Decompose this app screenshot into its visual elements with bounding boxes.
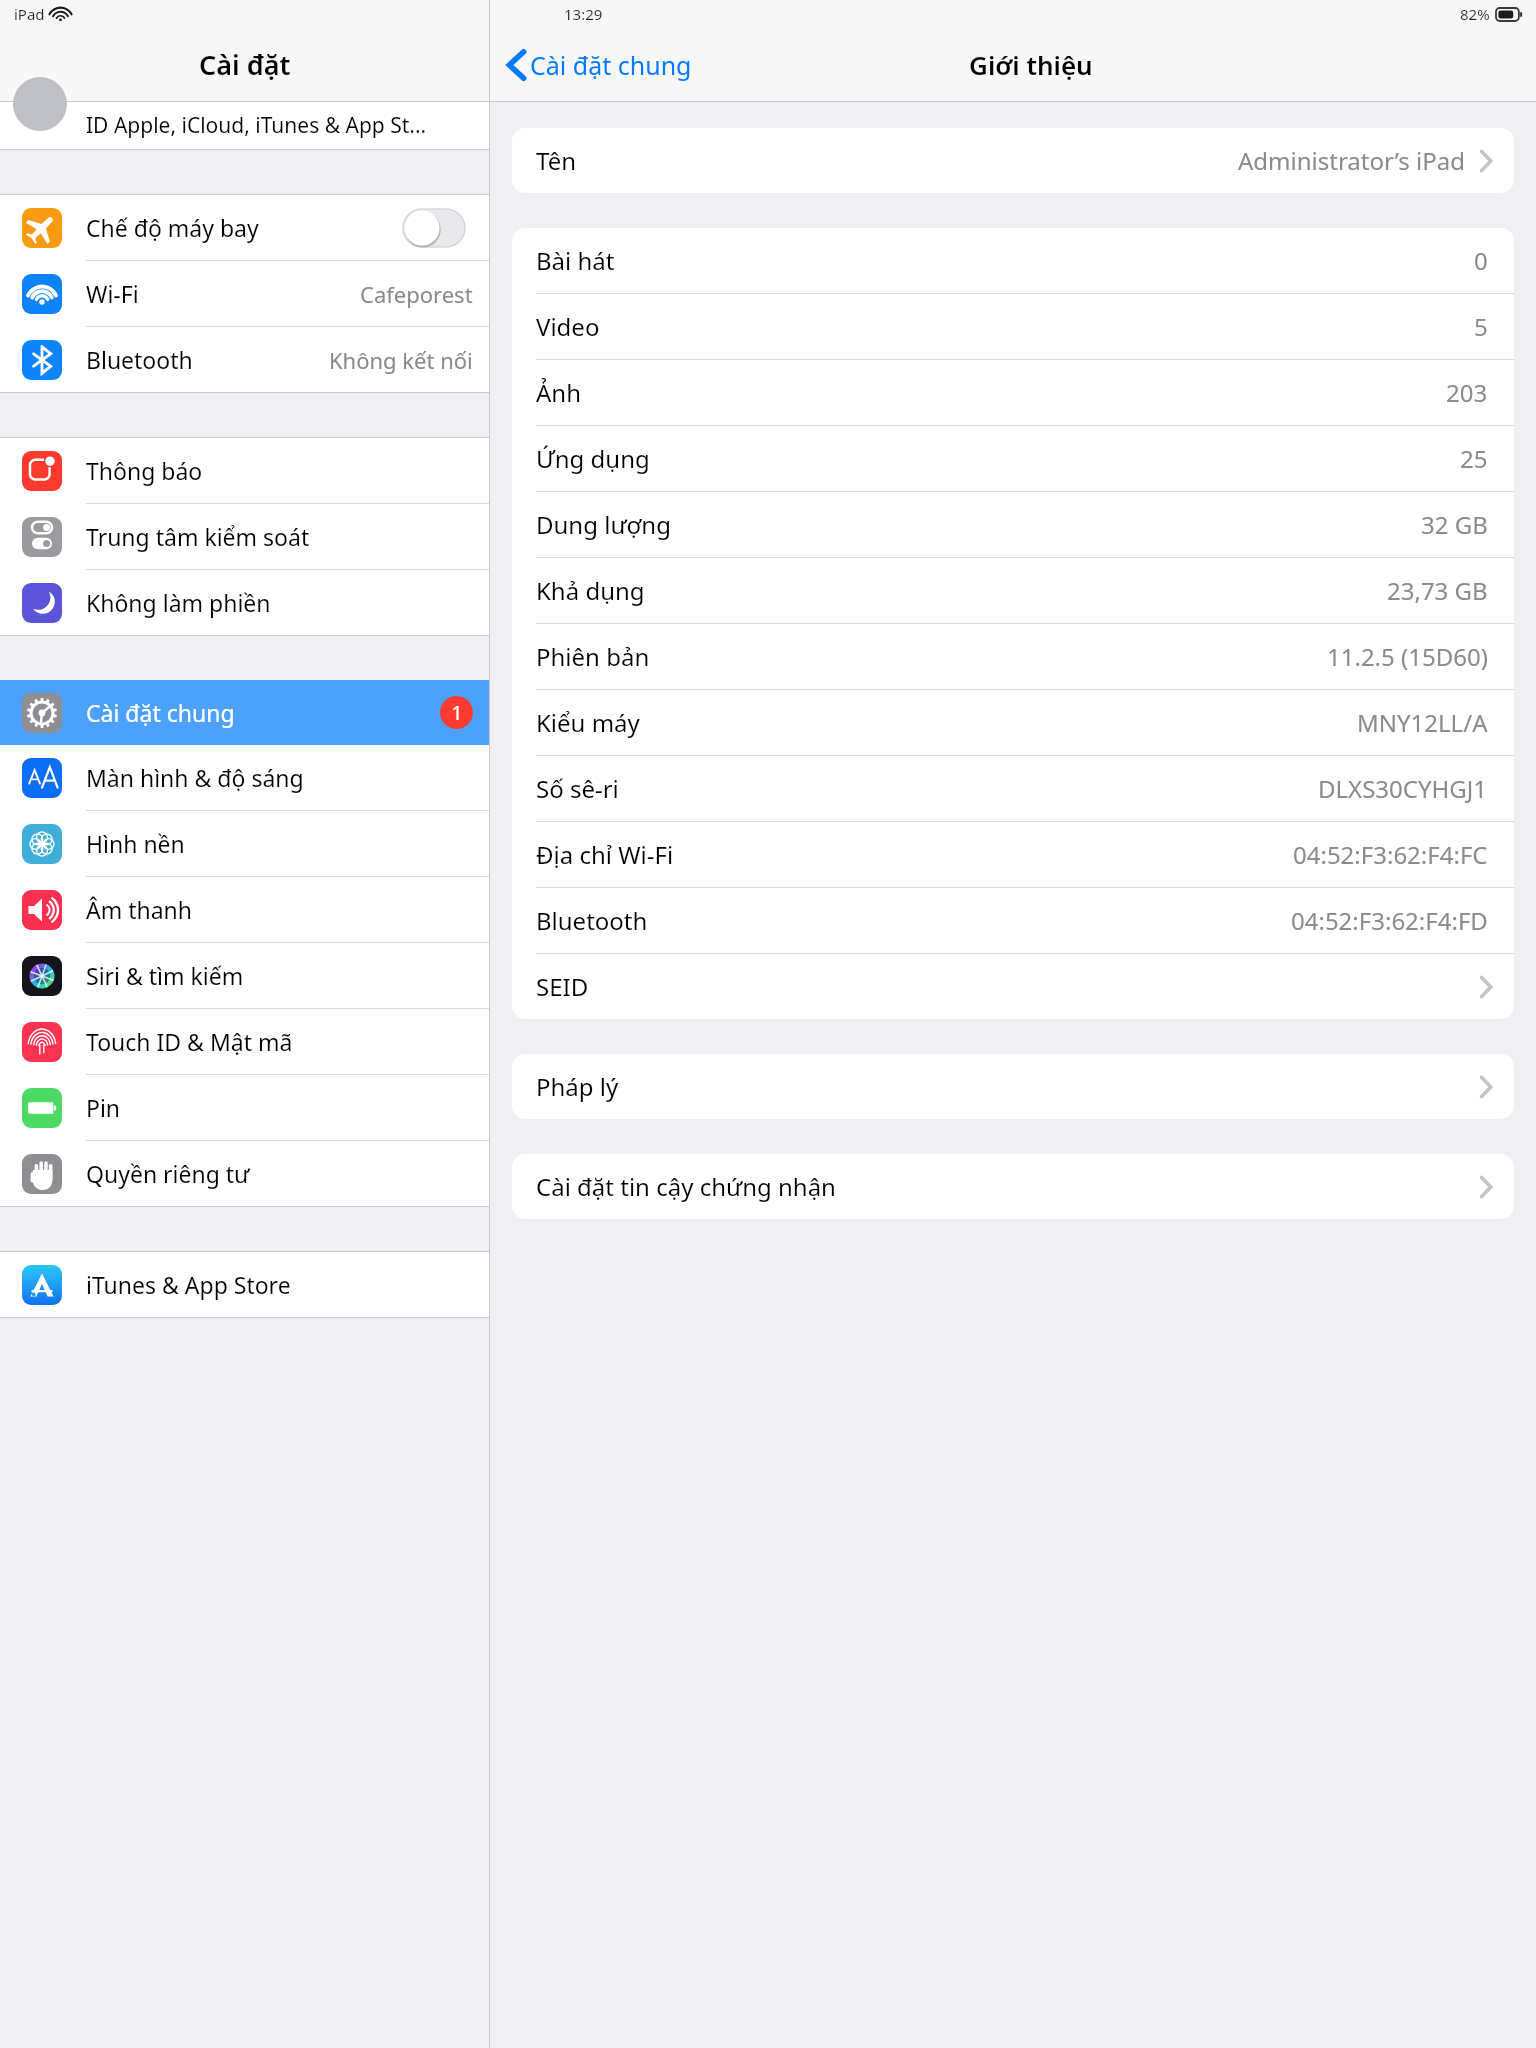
staticText: 0 <box>1474 244 1488 277</box>
staticText: ID Apple, iCloud, iTunes & App St... <box>86 111 427 140</box>
button[interactable]: SEID <box>512 954 1514 1019</box>
button[interactable]: Wi-Fi <box>0 261 489 326</box>
button[interactable]: Chế độ máy bay <box>0 195 489 260</box>
button[interactable]: Âm thanh <box>0 877 489 942</box>
button[interactable]: ID Apple, iCloud, iTunes & App St... <box>0 102 489 149</box>
button[interactable]: Bài hát <box>512 228 1514 294</box>
staticText: Thông báo <box>86 455 203 486</box>
button[interactable]: Thông báo <box>0 438 489 503</box>
staticText: Màn hình & độ sáng <box>86 762 304 793</box>
button[interactable]: Airplane mode toggle <box>403 209 465 247</box>
staticText: Không làm phiền <box>86 587 271 618</box>
staticText: 11.2.5 (15D60) <box>1327 640 1488 673</box>
staticText: Trung tâm kiểm soát <box>86 521 310 552</box>
staticText: Cài đặt chung <box>530 48 692 82</box>
staticText: DLXS30CYHGJ1 <box>1318 772 1488 805</box>
staticText: Pin <box>86 1092 121 1123</box>
button[interactable]: Ứng dụng <box>512 426 1514 492</box>
staticText: Địa chỉ Wi-Fi <box>536 838 674 871</box>
staticText: Administrator’s iPad <box>1238 144 1466 177</box>
staticText: Video <box>536 310 600 343</box>
staticText: 32 GB <box>1421 508 1488 541</box>
button[interactable]: Touch ID & Mật mã <box>0 1009 489 1074</box>
staticText: 23,73 GB <box>1387 574 1488 607</box>
button[interactable]: Màn hình & độ sáng <box>0 745 489 810</box>
button[interactable]: Hình nền <box>0 811 489 876</box>
staticText: Khả dụng <box>536 574 645 607</box>
button[interactable]: Ảnh <box>512 360 1514 426</box>
staticText: Dung lượng <box>536 508 671 541</box>
staticText: Cài đặt <box>199 46 291 83</box>
staticText: 82% <box>1460 4 1490 24</box>
staticText: Ảnh <box>536 376 581 409</box>
staticText: 203 <box>1446 376 1488 409</box>
staticText: Số sê-ri <box>536 772 619 805</box>
staticText: Kiểu máy <box>536 706 640 739</box>
button[interactable]: iTunes & App Store <box>0 1252 489 1317</box>
staticText: Bluetooth <box>536 904 648 937</box>
button[interactable]: Không làm phiền <box>0 570 489 635</box>
button[interactable]: Tên <box>512 128 1514 193</box>
button[interactable]: Trung tâm kiểm soát <box>0 504 489 569</box>
staticText: iTunes & App Store <box>86 1269 291 1300</box>
staticText: Wi-Fi <box>86 278 139 309</box>
button[interactable]: Cài đặt tin cậy chứng nhận <box>512 1154 1514 1219</box>
staticText: 1 <box>451 699 463 726</box>
staticText: Siri & tìm kiếm <box>86 960 244 991</box>
staticText: 04:52:F3:62:F4:FC <box>1293 838 1488 871</box>
button[interactable]: Khả dụng <box>512 558 1514 624</box>
staticText: Pháp lý <box>536 1070 619 1103</box>
staticText: Bài hát <box>536 244 615 277</box>
button[interactable]: Kiểu máy <box>512 690 1514 756</box>
staticText: Cài đặt chung <box>86 697 235 728</box>
staticText: 25 <box>1460 442 1488 475</box>
staticText: Cài đặt tin cậy chứng nhận <box>536 1170 836 1203</box>
button[interactable]: Cài đặt chung <box>508 28 692 101</box>
staticText: Chế độ máy bay <box>86 212 259 243</box>
button[interactable]: Dung lượng <box>512 492 1514 558</box>
button[interactable]: Quyền riêng tư <box>0 1141 489 1206</box>
staticText: iPad <box>14 4 45 24</box>
button[interactable]: Phiên bản <box>512 624 1514 690</box>
button[interactable]: Số sê-ri <box>512 756 1514 822</box>
staticText: Touch ID & Mật mã <box>86 1026 293 1057</box>
button[interactable]: Pháp lý <box>512 1054 1514 1119</box>
staticText: 13:29 <box>564 4 603 24</box>
staticText: Bluetooth <box>86 344 193 375</box>
button[interactable]: Cài đặt chung <box>0 680 489 745</box>
staticText: Hình nền <box>86 828 185 859</box>
button[interactable]: Pin <box>0 1075 489 1140</box>
staticText: SEID <box>536 970 589 1003</box>
button[interactable]: Bluetooth <box>0 327 489 392</box>
staticText: MNY12LL/A <box>1357 706 1488 739</box>
staticText: Quyền riêng tư <box>86 1158 250 1189</box>
button[interactable]: Siri & tìm kiếm <box>0 943 489 1008</box>
staticText: Không kết nối <box>329 345 473 375</box>
staticText: Cafeporest <box>360 279 473 309</box>
staticText: 04:52:F3:62:F4:FD <box>1291 904 1488 937</box>
staticText: Phiên bản <box>536 640 650 673</box>
staticText: Ứng dụng <box>536 442 650 475</box>
staticText: Tên <box>536 144 577 177</box>
staticText: Âm thanh <box>86 894 193 925</box>
staticText: 5 <box>1474 310 1488 343</box>
button[interactable]: Bluetooth <box>512 888 1514 954</box>
button[interactable]: Địa chỉ Wi-Fi <box>512 822 1514 888</box>
staticText: Giới thiệu <box>969 47 1093 82</box>
button[interactable]: Video <box>512 294 1514 360</box>
